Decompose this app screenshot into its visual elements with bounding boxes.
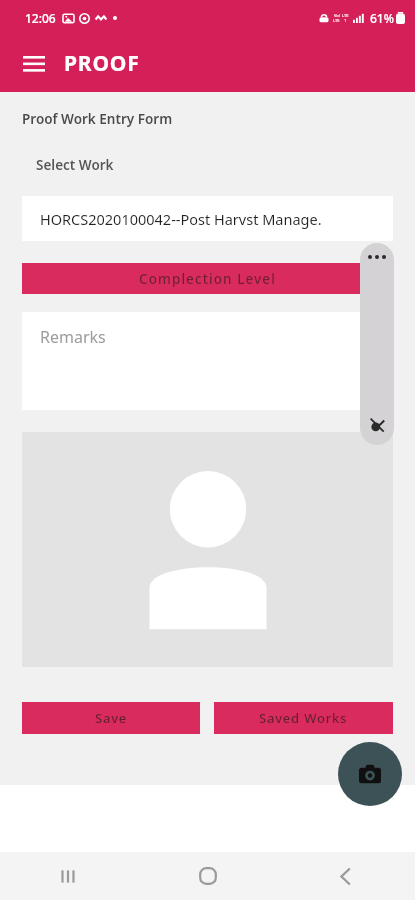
button[interactable]: Home: [139, 852, 277, 900]
button[interactable]: Save: [22, 702, 200, 734]
button[interactable]: Open navigation menu: [12, 42, 56, 86]
button[interactable]: [22, 432, 393, 667]
button[interactable]: HORCS2020100042--Post Harvst Manage.: [22, 196, 393, 241]
staticText: Save: [95, 709, 128, 727]
staticText: LTE: [342, 13, 349, 18]
staticText: Proof Work Entry Form: [22, 110, 173, 128]
staticText: Saved Works: [259, 709, 348, 727]
staticText: Remarks: [40, 326, 106, 348]
staticText: Select Work: [36, 156, 114, 174]
staticText: Vol: [334, 13, 340, 18]
button[interactable]: Saved Works: [214, 702, 393, 734]
button[interactable]: Complection Level: [22, 263, 393, 294]
staticText: HORCS2020100042--Post Harvst Manage.: [40, 209, 322, 229]
staticText: 12:06: [25, 10, 56, 26]
staticText: PROOF: [64, 49, 140, 78]
staticText: 61%: [370, 10, 394, 26]
staticText: Complection Level: [139, 270, 276, 288]
button[interactable]: Remarks: [22, 312, 393, 410]
staticText: 1: [344, 18, 347, 23]
staticText: LTE: [333, 18, 340, 23]
button[interactable]: Recent apps: [0, 852, 139, 900]
button[interactable]: Back: [277, 852, 415, 900]
button[interactable]: Take photo: [338, 742, 402, 806]
button[interactable]: Floating tools panel: [360, 243, 394, 445]
